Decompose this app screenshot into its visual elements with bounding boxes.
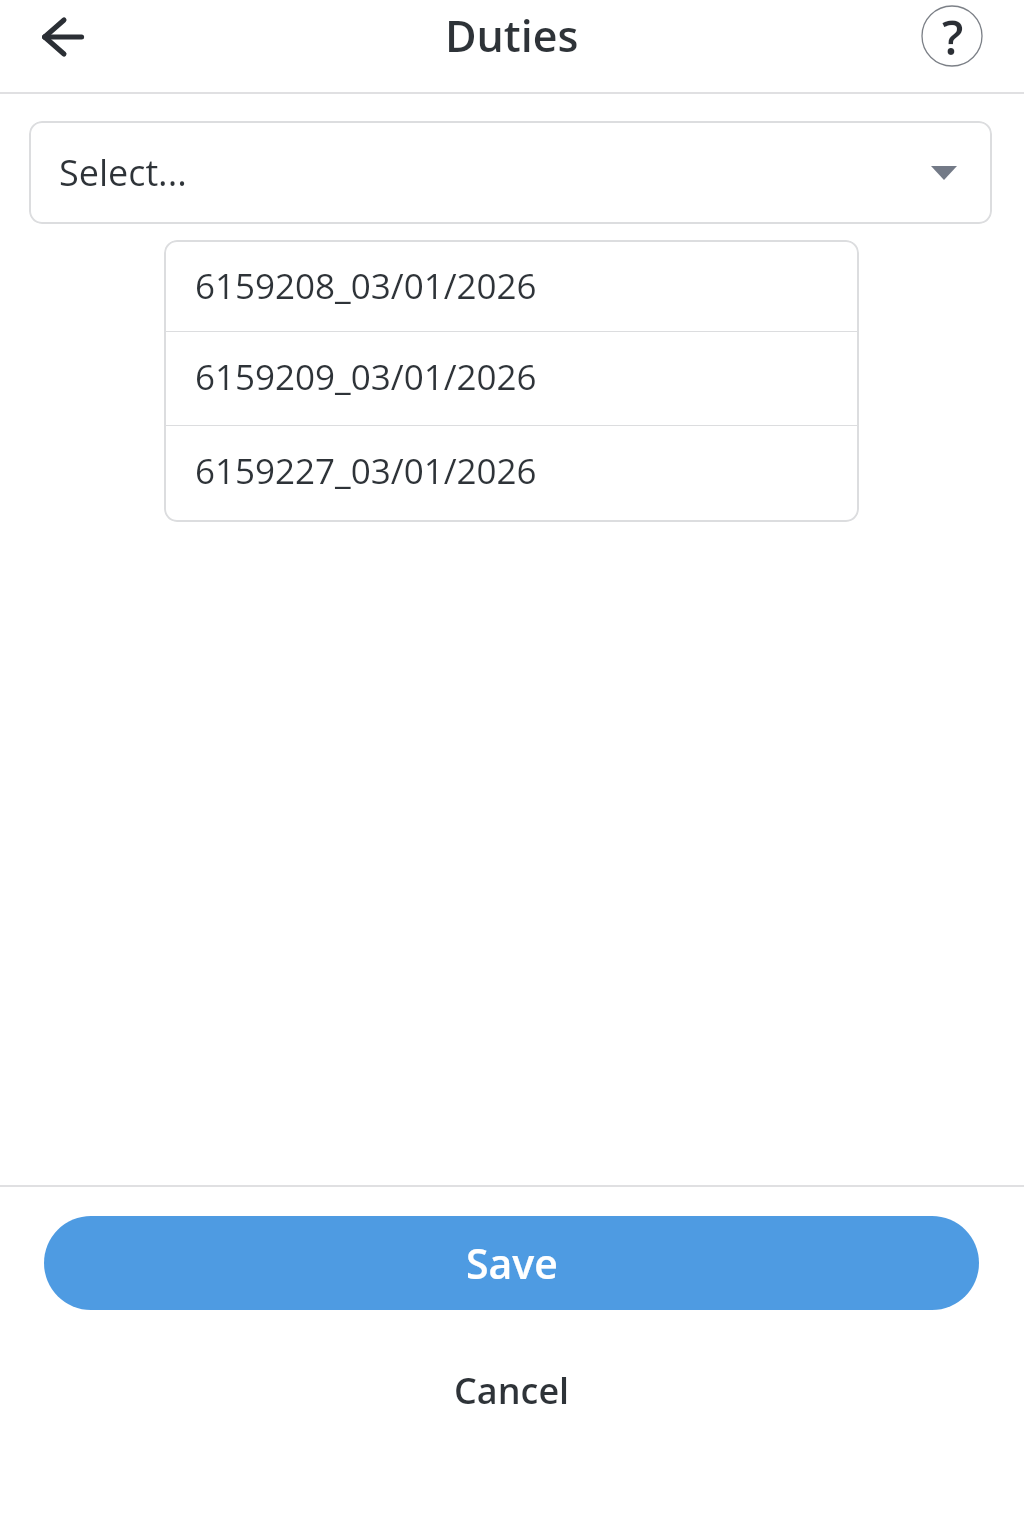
button[interactable]: Help	[910, 0, 994, 78]
staticText: ?	[942, 5, 964, 67]
staticText: 6159208_03/01/2026	[195, 262, 537, 310]
button[interactable]: Back	[21, 0, 105, 74]
staticText: Select...	[59, 148, 187, 197]
staticText: Duties	[445, 6, 579, 65]
staticText: 6159227_03/01/2026	[195, 447, 537, 495]
button[interactable]: Select...	[29, 121, 992, 224]
staticText: Save	[466, 1235, 558, 1291]
button[interactable]: 6159227_03/01/2026	[164, 426, 859, 521]
button[interactable]: Save	[44, 1216, 979, 1310]
button[interactable]: 6159208_03/01/2026	[164, 240, 859, 331]
staticText: Cancel	[454, 1366, 570, 1415]
button[interactable]: Cancel	[332, 1355, 692, 1425]
button[interactable]: 6159209_03/01/2026	[164, 332, 859, 425]
staticText: 6159209_03/01/2026	[195, 353, 537, 401]
